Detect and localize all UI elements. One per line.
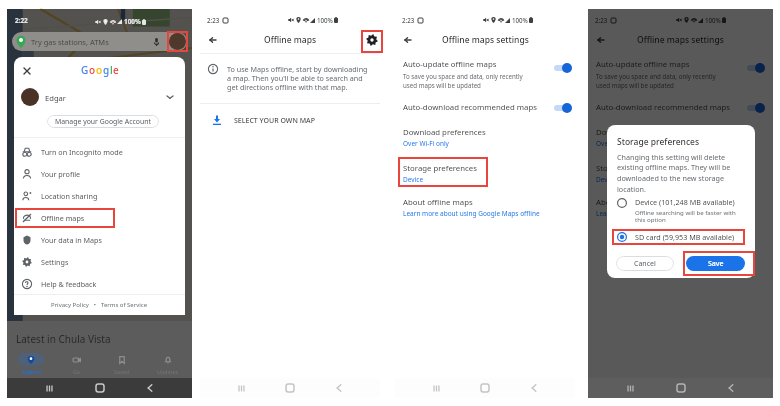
button[interactable]: Auto-update offline maps bbox=[395, 57, 575, 97]
staticText: e bbox=[113, 63, 119, 77]
staticText: o bbox=[96, 63, 103, 77]
staticText: 2:23 bbox=[595, 16, 608, 24]
button[interactable]: Offline maps bbox=[14, 207, 185, 229]
staticText: 100% bbox=[512, 16, 528, 24]
button[interactable]: Manage your Google Account bbox=[47, 115, 159, 128]
button[interactable]: Recent apps bbox=[41, 380, 57, 396]
button[interactable]: Toggle bbox=[554, 62, 572, 73]
staticText: Device bbox=[596, 175, 617, 184]
staticText: Latest in Chula Vista bbox=[16, 332, 111, 346]
staticText: SD card (59,953 MB available) bbox=[635, 232, 735, 242]
button[interactable]: Back bbox=[205, 32, 221, 48]
button[interactable]: Back bbox=[331, 380, 347, 396]
button[interactable]: Toggle bbox=[747, 102, 765, 113]
button[interactable]: Cancel bbox=[616, 256, 674, 271]
staticText: Turn on Incognito mode bbox=[41, 147, 123, 157]
staticText: g bbox=[103, 63, 110, 77]
staticText: 100% bbox=[705, 16, 721, 24]
staticText: Download preferences bbox=[596, 127, 679, 138]
button[interactable]: Toggle bbox=[747, 62, 765, 73]
button[interactable]: Toggle bbox=[554, 102, 572, 113]
staticText: Updates bbox=[157, 368, 179, 375]
button[interactable]: Home bbox=[477, 380, 493, 396]
button[interactable]: Home bbox=[92, 380, 108, 396]
button[interactable]: Auto-update offline maps bbox=[588, 57, 773, 97]
staticText: Cancel bbox=[634, 259, 656, 269]
staticText: Storage preferences bbox=[617, 136, 700, 148]
staticText: Offline maps bbox=[41, 213, 85, 223]
button[interactable]: Auto-download recommended maps bbox=[588, 100, 773, 115]
button[interactable]: Turn on Incognito mode bbox=[14, 141, 185, 163]
staticText: Download preferences bbox=[403, 127, 486, 138]
staticText: Learn more about using Google Maps offli… bbox=[403, 209, 540, 218]
button[interactable]: Settings bbox=[14, 251, 185, 273]
button[interactable]: Storage preferences bbox=[588, 163, 773, 184]
staticText: 2:22 bbox=[15, 16, 28, 25]
staticText: G bbox=[81, 63, 89, 77]
button[interactable]: SD card (59,953 MB available) bbox=[607, 230, 755, 243]
button[interactable]: Updates bbox=[147, 351, 189, 379]
button[interactable]: Back bbox=[400, 32, 416, 48]
staticText: 2:23 bbox=[207, 16, 220, 24]
staticText: Explore bbox=[22, 368, 41, 375]
button[interactable]: Home bbox=[282, 380, 298, 396]
button[interactable]: Back bbox=[526, 380, 542, 396]
button[interactable]: SELECT YOUR OWN MAP bbox=[200, 110, 380, 131]
staticText: Learn more about using Google Maps offli… bbox=[596, 209, 733, 218]
button[interactable]: Recent apps bbox=[428, 380, 444, 396]
button[interactable]: Device (101,248 MB available) bbox=[607, 197, 755, 224]
staticText: Saved bbox=[114, 368, 130, 375]
staticText: o bbox=[89, 63, 96, 77]
button[interactable]: Storage preferences bbox=[395, 163, 575, 184]
staticText: Over Wi-Fi only bbox=[403, 139, 449, 148]
button[interactable]: Go bbox=[56, 351, 98, 379]
button[interactable]: Recent apps bbox=[622, 380, 638, 396]
staticText: Settings bbox=[41, 257, 69, 267]
staticText: Go bbox=[73, 368, 81, 375]
staticText: To use Maps offline, start by downloadin… bbox=[227, 64, 373, 92]
button[interactable]: Your data in Maps bbox=[14, 229, 185, 251]
staticText: Terms of Service bbox=[101, 301, 148, 309]
staticText: Edgar bbox=[45, 93, 66, 103]
staticText: Device bbox=[403, 175, 424, 184]
staticText: Manage your Google Account bbox=[55, 117, 151, 126]
button[interactable]: Try gas stations, ATMs bbox=[12, 32, 187, 51]
button[interactable]: Account bbox=[169, 33, 186, 50]
staticText: Storage preferences bbox=[403, 163, 477, 174]
button[interactable]: Close bbox=[20, 64, 34, 78]
staticText: Auto-download recommended maps bbox=[403, 102, 537, 113]
staticText: Try gas stations, ATMs bbox=[31, 37, 109, 47]
button[interactable]: Back bbox=[142, 380, 158, 396]
staticText: • bbox=[89, 301, 101, 309]
button[interactable]: Help & feedback bbox=[14, 273, 185, 295]
button[interactable]: Saved bbox=[101, 351, 143, 379]
button[interactable]: Home bbox=[673, 380, 689, 396]
button[interactable]: About offline maps bbox=[588, 197, 773, 218]
button[interactable]: Location sharing bbox=[14, 185, 185, 207]
staticText: SELECT YOUR OWN MAP bbox=[234, 116, 315, 126]
button[interactable]: Download preferences bbox=[588, 127, 773, 148]
button[interactable]: Expand accounts bbox=[164, 91, 176, 103]
staticText: Auto-update offline maps bbox=[403, 59, 497, 70]
button[interactable]: Your profile bbox=[14, 163, 185, 185]
button[interactable]: Download preferences bbox=[395, 127, 575, 148]
staticText: To save you space and data, only recentl… bbox=[596, 72, 724, 90]
staticText: 2:23 bbox=[402, 16, 415, 24]
staticText: About offline maps bbox=[596, 197, 666, 208]
button[interactable]: Settings bbox=[364, 32, 380, 48]
staticText: 100% bbox=[317, 16, 333, 24]
button[interactable]: Save bbox=[686, 256, 745, 271]
button[interactable]: Explore bbox=[10, 351, 52, 379]
button[interactable]: Recent apps bbox=[233, 380, 249, 396]
button[interactable]: Auto-download recommended maps bbox=[395, 100, 575, 115]
staticText: l bbox=[110, 63, 113, 77]
button[interactable]: Back bbox=[723, 380, 739, 396]
staticText: Location sharing bbox=[41, 191, 98, 201]
button[interactable]: Edgar bbox=[14, 88, 185, 107]
staticText: Changing this setting will delete existi… bbox=[617, 152, 745, 194]
button[interactable]: About offline maps bbox=[395, 197, 575, 218]
staticText: Auto-update offline maps bbox=[596, 59, 690, 70]
staticText: Over Wi-Fi only bbox=[596, 139, 642, 148]
staticText: Auto-download recommended maps bbox=[596, 102, 730, 113]
staticText: Storage preferences bbox=[596, 163, 670, 174]
